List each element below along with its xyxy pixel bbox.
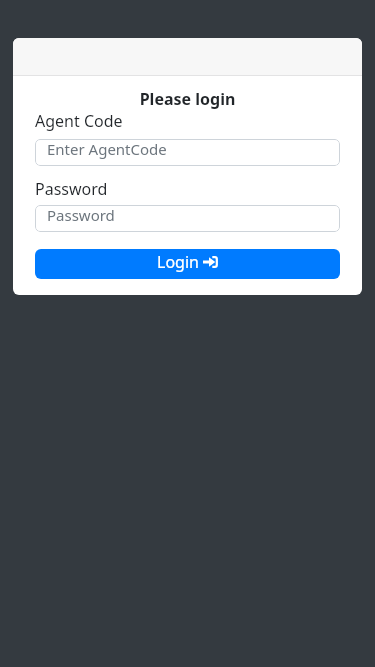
staticText: Password bbox=[47, 205, 115, 225]
staticText: Password bbox=[35, 178, 108, 200]
staticText: Please login bbox=[35, 88, 340, 110]
staticText: Login bbox=[157, 251, 199, 273]
staticText: Agent Code bbox=[35, 110, 123, 132]
button[interactable]: Enter AgentCode bbox=[35, 139, 340, 166]
staticText: Enter AgentCode bbox=[47, 139, 167, 159]
button[interactable]: Password bbox=[35, 205, 340, 232]
button[interactable]: Login bbox=[35, 249, 340, 279]
